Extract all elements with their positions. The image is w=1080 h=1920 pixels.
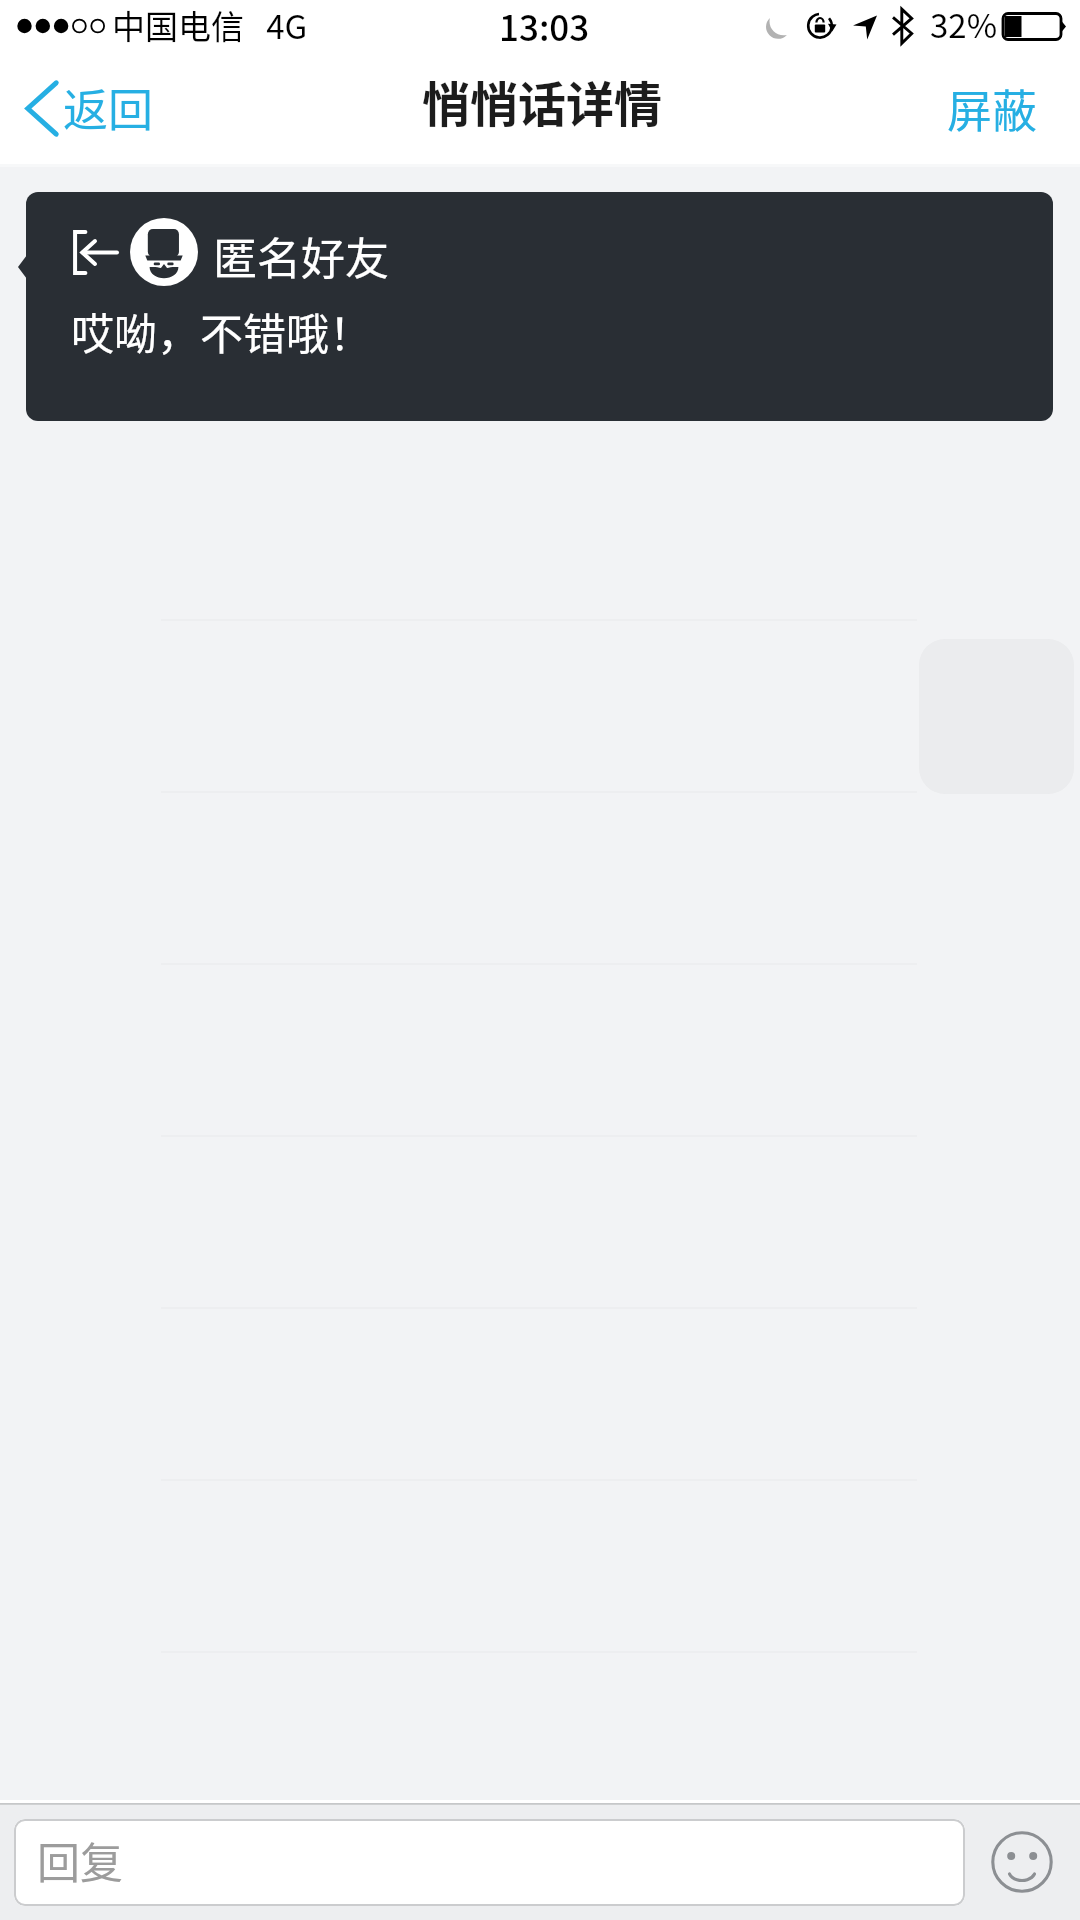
staticText: 中国电信 4G [112, 1, 308, 49]
button[interactable]: 匿名好友 [26, 192, 1053, 421]
staticText: 屏蔽 [947, 76, 1038, 141]
staticText: 32% [930, 0, 998, 48]
button[interactable]: Emoji keyboard [988, 1828, 1056, 1896]
staticText: 哎呦，不错哦！ [71, 300, 372, 362]
staticText: 13:03 [499, 0, 590, 51]
button[interactable]: 回复 [14, 1819, 965, 1906]
staticText: 回复 [37, 1829, 123, 1891]
staticText: 匿名好友 [213, 224, 389, 288]
button[interactable]: 返回 [25, 76, 154, 141]
staticText: 返回 [63, 75, 154, 140]
staticText: 悄悄话详情 [422, 66, 663, 136]
button[interactable]: 屏蔽 [947, 76, 1038, 141]
